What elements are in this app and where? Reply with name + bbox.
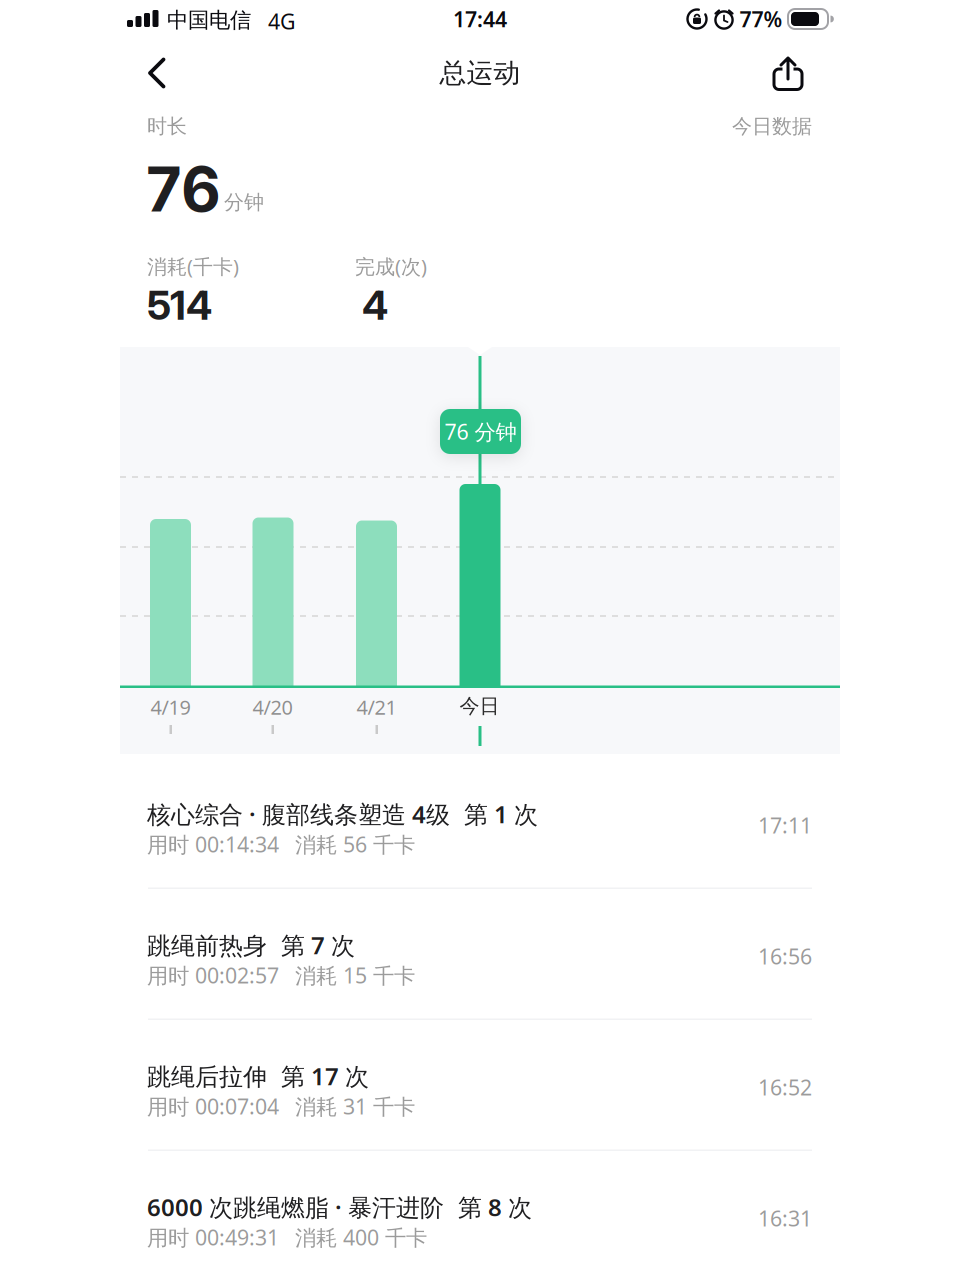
staticText: 76: [146, 152, 221, 226]
button[interactable]: 跳绳前热身 第 7 次: [0, 889, 960, 1020]
staticText: 跳绳后拉伸 第 17 次: [147, 1060, 369, 1092]
staticText: 4G: [268, 7, 296, 35]
staticText: 消耗(千卡): [147, 253, 239, 280]
button[interactable]: 核心综合 · 腹部线条塑造 4级 第 1 次: [0, 758, 960, 889]
staticText: 消耗 400 千卡: [295, 1223, 427, 1251]
staticText: 中国电信: [167, 7, 251, 33]
staticText: 用时 00:14:34: [147, 830, 279, 858]
staticText: 16:31: [758, 1204, 812, 1232]
staticText: 今日数据: [732, 114, 812, 139]
staticText: 用时 00:07:04: [147, 1092, 279, 1120]
staticText: 6000 次跳绳燃脂 · 暴汗进阶 第 8 次: [147, 1191, 532, 1223]
staticText: 16:56: [758, 942, 812, 970]
staticText: 17:11: [758, 811, 812, 839]
staticText: 消耗 31 千卡: [295, 1092, 415, 1120]
staticText: 消耗 15 千卡: [295, 961, 415, 989]
staticText: 77%: [739, 5, 782, 33]
staticText: 4/19: [150, 694, 190, 720]
staticText: 17:44: [453, 5, 507, 33]
staticText: 514: [147, 281, 212, 329]
staticText: 消耗 56 千卡: [295, 830, 415, 858]
staticText: 跳绳前热身 第 7 次: [147, 929, 355, 961]
staticText: 4/21: [356, 694, 396, 720]
staticText: 总运动: [439, 57, 520, 89]
button[interactable]: Share: [764, 50, 812, 96]
staticText: 用时 00:02:57: [147, 961, 279, 989]
button[interactable]: 跳绳后拉伸 第 17 次: [0, 1020, 960, 1151]
staticText: 4: [362, 281, 388, 329]
button[interactable]: Back: [133, 49, 181, 97]
button[interactable]: 4/21: [356, 520, 397, 687]
button[interactable]: 4/19: [150, 519, 191, 687]
staticText: 用时 00:49:31: [147, 1223, 279, 1251]
staticText: 今日: [459, 694, 499, 718]
staticText: 16:52: [758, 1073, 812, 1101]
button[interactable]: 4/20: [252, 517, 293, 687]
staticText: 时长: [147, 114, 187, 139]
staticText: 4/20: [252, 694, 292, 720]
button[interactable]: 6000 次跳绳燃脂 · 暴汗进阶 第 8 次: [0, 1151, 960, 1280]
staticText: 核心综合 · 腹部线条塑造 4级 第 1 次: [147, 798, 538, 830]
staticText: 76 分钟: [444, 417, 516, 446]
button[interactable]: 今日: [459, 484, 500, 687]
staticText: 完成(次): [355, 253, 427, 280]
staticText: 分钟: [224, 190, 264, 215]
